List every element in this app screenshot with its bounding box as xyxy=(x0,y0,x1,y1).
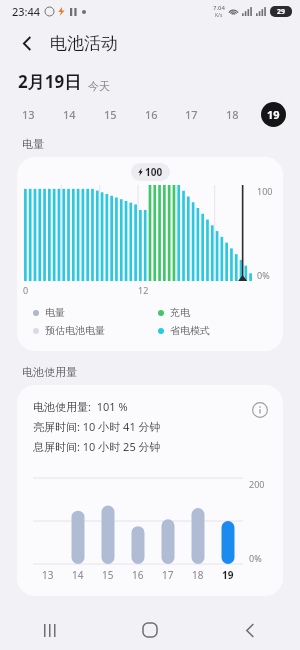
staticText: 15 xyxy=(102,568,114,582)
staticText: 23:44 xyxy=(12,4,41,19)
button[interactable]: 13 xyxy=(16,102,41,127)
staticText: 100 xyxy=(145,165,163,179)
staticText: 19 xyxy=(267,107,280,122)
staticText: 200 xyxy=(249,478,265,490)
button[interactable]: 18 xyxy=(220,102,245,127)
staticText: 14 xyxy=(63,107,76,122)
staticText: 省电模式 xyxy=(170,324,210,337)
staticText: 13 xyxy=(22,107,35,122)
staticText: 今天 xyxy=(88,79,110,93)
button[interactable]: 16 xyxy=(139,102,164,127)
button[interactable]: Home xyxy=(100,610,200,650)
staticText: 15 xyxy=(104,107,117,122)
button[interactable]: Back xyxy=(14,30,40,56)
staticText: 12 xyxy=(138,284,149,296)
staticText: 预估电池电量 xyxy=(45,324,105,337)
staticText: 亮屏时间: 10 小时 41 分钟 xyxy=(33,419,161,434)
staticText: 19 xyxy=(222,568,234,582)
staticText: 电池活动 xyxy=(50,33,118,54)
staticText: 息屏时间: 10 小时 25 分钟 xyxy=(33,439,161,454)
staticText: 17 xyxy=(162,568,174,582)
staticText: 2月19日 xyxy=(18,70,82,93)
staticText: 电池使用量 xyxy=(22,365,77,379)
button[interactable]: 电池使用量: 101 % xyxy=(17,385,283,596)
staticText: 13 xyxy=(42,568,54,582)
staticText: 100 xyxy=(257,185,273,197)
staticText: 0% xyxy=(257,269,270,281)
staticText: 14 xyxy=(72,568,84,582)
staticText: K/s xyxy=(215,12,223,19)
staticText: 0 xyxy=(23,284,29,296)
staticText: 18 xyxy=(226,107,239,122)
staticText: 7.04 xyxy=(213,4,225,12)
button[interactable]: 14 xyxy=(57,102,82,127)
staticText: 17 xyxy=(185,107,198,122)
staticText: 电量 xyxy=(22,137,44,151)
staticText: 0% xyxy=(249,552,262,564)
staticText: 18 xyxy=(192,568,204,582)
staticText: 29 xyxy=(277,7,286,17)
button[interactable]: Info xyxy=(249,399,271,421)
staticText: 16 xyxy=(132,568,144,582)
button[interactable]: Back xyxy=(200,610,300,650)
staticText: 充电 xyxy=(170,306,190,319)
button[interactable]: Recents xyxy=(0,610,100,650)
button[interactable]: 100 xyxy=(17,157,283,351)
staticText: 电量 xyxy=(45,306,65,319)
button[interactable]: 19 xyxy=(261,102,286,127)
staticText: 16 xyxy=(145,107,158,122)
button[interactable]: 17 xyxy=(179,102,204,127)
button[interactable]: 15 xyxy=(98,102,123,127)
staticText: 电池使用量: 101 % xyxy=(33,399,128,414)
